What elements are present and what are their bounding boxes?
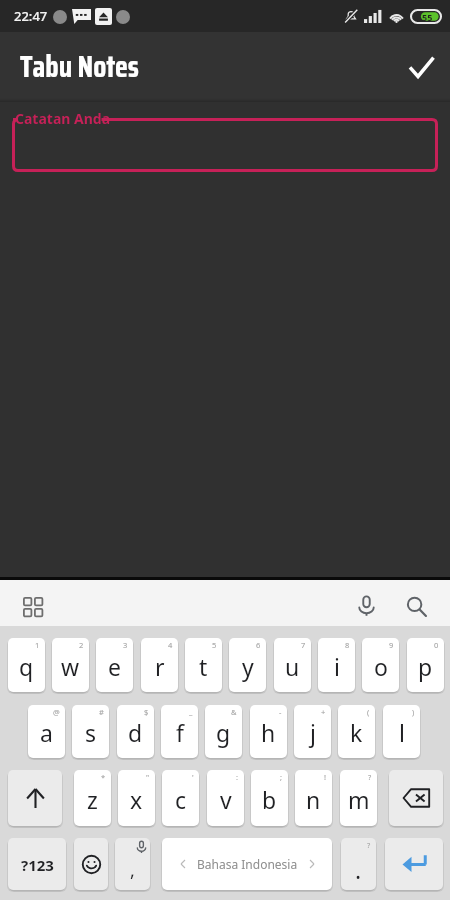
staticText: ) — [412, 707, 415, 717]
button[interactable]: m — [340, 770, 377, 826]
staticText: Bahasa Indonesia — [197, 856, 298, 872]
staticText: _ — [189, 707, 193, 717]
staticText: q — [19, 651, 34, 682]
button[interactable]: r — [141, 638, 178, 692]
button[interactable]: Keyboard toolbar — [14, 592, 52, 622]
button[interactable]: Search — [398, 590, 434, 622]
button[interactable]: ?123 — [8, 838, 66, 890]
staticText: l — [399, 717, 405, 748]
button[interactable]: e — [96, 638, 133, 692]
button[interactable]: Emoji — [74, 838, 108, 890]
button[interactable]: s — [72, 705, 109, 758]
staticText: 5 — [212, 640, 217, 650]
button[interactable]: a — [28, 705, 65, 758]
staticText: " — [146, 772, 150, 782]
staticText: m — [348, 784, 370, 815]
button[interactable]: x — [118, 770, 155, 826]
staticText: 3 — [123, 640, 128, 650]
staticText: a — [40, 717, 53, 748]
button[interactable]: n — [295, 770, 332, 826]
staticText: 55 — [422, 11, 433, 23]
button[interactable]: w — [52, 638, 89, 692]
button[interactable]: c — [162, 770, 199, 826]
staticText: ( — [367, 707, 370, 717]
button[interactable]: f — [161, 705, 198, 758]
staticText: y — [242, 651, 254, 682]
button[interactable]: q — [8, 638, 45, 692]
button[interactable]: Backspace — [389, 770, 443, 826]
staticText: 9 — [389, 640, 394, 650]
staticText: $ — [144, 707, 149, 717]
staticText: 8 — [345, 640, 350, 650]
staticText: j — [310, 717, 316, 748]
staticText: 6 — [256, 640, 261, 650]
staticText: # — [99, 707, 104, 717]
button[interactable]: Voice input — [349, 590, 383, 622]
button[interactable]: Shift — [8, 770, 62, 826]
staticText: . — [355, 854, 362, 885]
staticText: w — [61, 651, 80, 682]
staticText: f — [176, 717, 184, 748]
button[interactable]: k — [338, 705, 375, 758]
button[interactable]: Save note — [397, 43, 445, 91]
staticText: 0 — [434, 640, 439, 650]
staticText: g — [216, 717, 231, 748]
staticText: & — [231, 707, 237, 717]
staticText: o — [374, 651, 388, 682]
staticText: 7 — [301, 640, 306, 650]
button[interactable]: l — [383, 705, 420, 758]
button[interactable]: t — [185, 638, 222, 692]
staticText: v — [220, 784, 232, 815]
staticText: p — [418, 651, 433, 682]
staticText: x — [130, 784, 143, 815]
button[interactable]: b — [251, 770, 288, 826]
staticText: Tabu Notes — [20, 43, 139, 90]
staticText: c — [175, 784, 187, 815]
staticText: t — [199, 651, 208, 682]
button[interactable]: h — [250, 705, 287, 758]
staticText: 22:47 — [14, 7, 48, 25]
staticText: ? — [367, 840, 371, 850]
staticText: r — [155, 651, 165, 682]
button[interactable]: , — [115, 838, 150, 890]
staticText: k — [350, 717, 363, 748]
button[interactable]: v — [207, 770, 244, 826]
staticText: ; — [280, 772, 283, 782]
button[interactable]: p — [407, 638, 444, 692]
staticText: d — [128, 717, 143, 748]
button[interactable]: i — [318, 638, 355, 692]
button[interactable]: Enter — [385, 838, 443, 890]
staticText: u — [285, 651, 300, 682]
staticText: 1 — [35, 640, 40, 650]
staticText: ? — [368, 772, 372, 782]
staticText: * — [101, 772, 106, 782]
staticText: @ — [53, 707, 60, 717]
staticText: i — [334, 651, 340, 682]
staticText: h — [261, 717, 276, 748]
button[interactable]: y — [229, 638, 266, 692]
staticText: 2 — [79, 640, 84, 650]
staticText: + — [321, 707, 326, 717]
button[interactable]: . — [341, 838, 376, 890]
staticText: ?123 — [21, 855, 54, 875]
staticText: s — [85, 717, 97, 748]
staticText: n — [306, 784, 321, 815]
button[interactable]: d — [117, 705, 154, 758]
staticText: : — [236, 772, 239, 782]
button[interactable]: o — [362, 638, 399, 692]
staticText: e — [108, 651, 121, 682]
staticText: b — [262, 784, 277, 815]
button[interactable]: z — [74, 770, 111, 826]
staticText: , — [130, 858, 135, 883]
staticText: - — [279, 707, 282, 717]
button[interactable]: j — [294, 705, 331, 758]
staticText: ! — [324, 772, 327, 782]
staticText: 4 — [168, 640, 173, 650]
staticText: z — [87, 784, 98, 815]
button[interactable]: Bahasa Indonesia — [162, 838, 332, 890]
button[interactable]: g — [205, 705, 242, 758]
staticText: ' — [192, 772, 194, 782]
button[interactable]: Catatan Anda — [12, 118, 438, 172]
button[interactable]: u — [274, 638, 311, 692]
staticText: Catatan Anda — [15, 109, 111, 128]
